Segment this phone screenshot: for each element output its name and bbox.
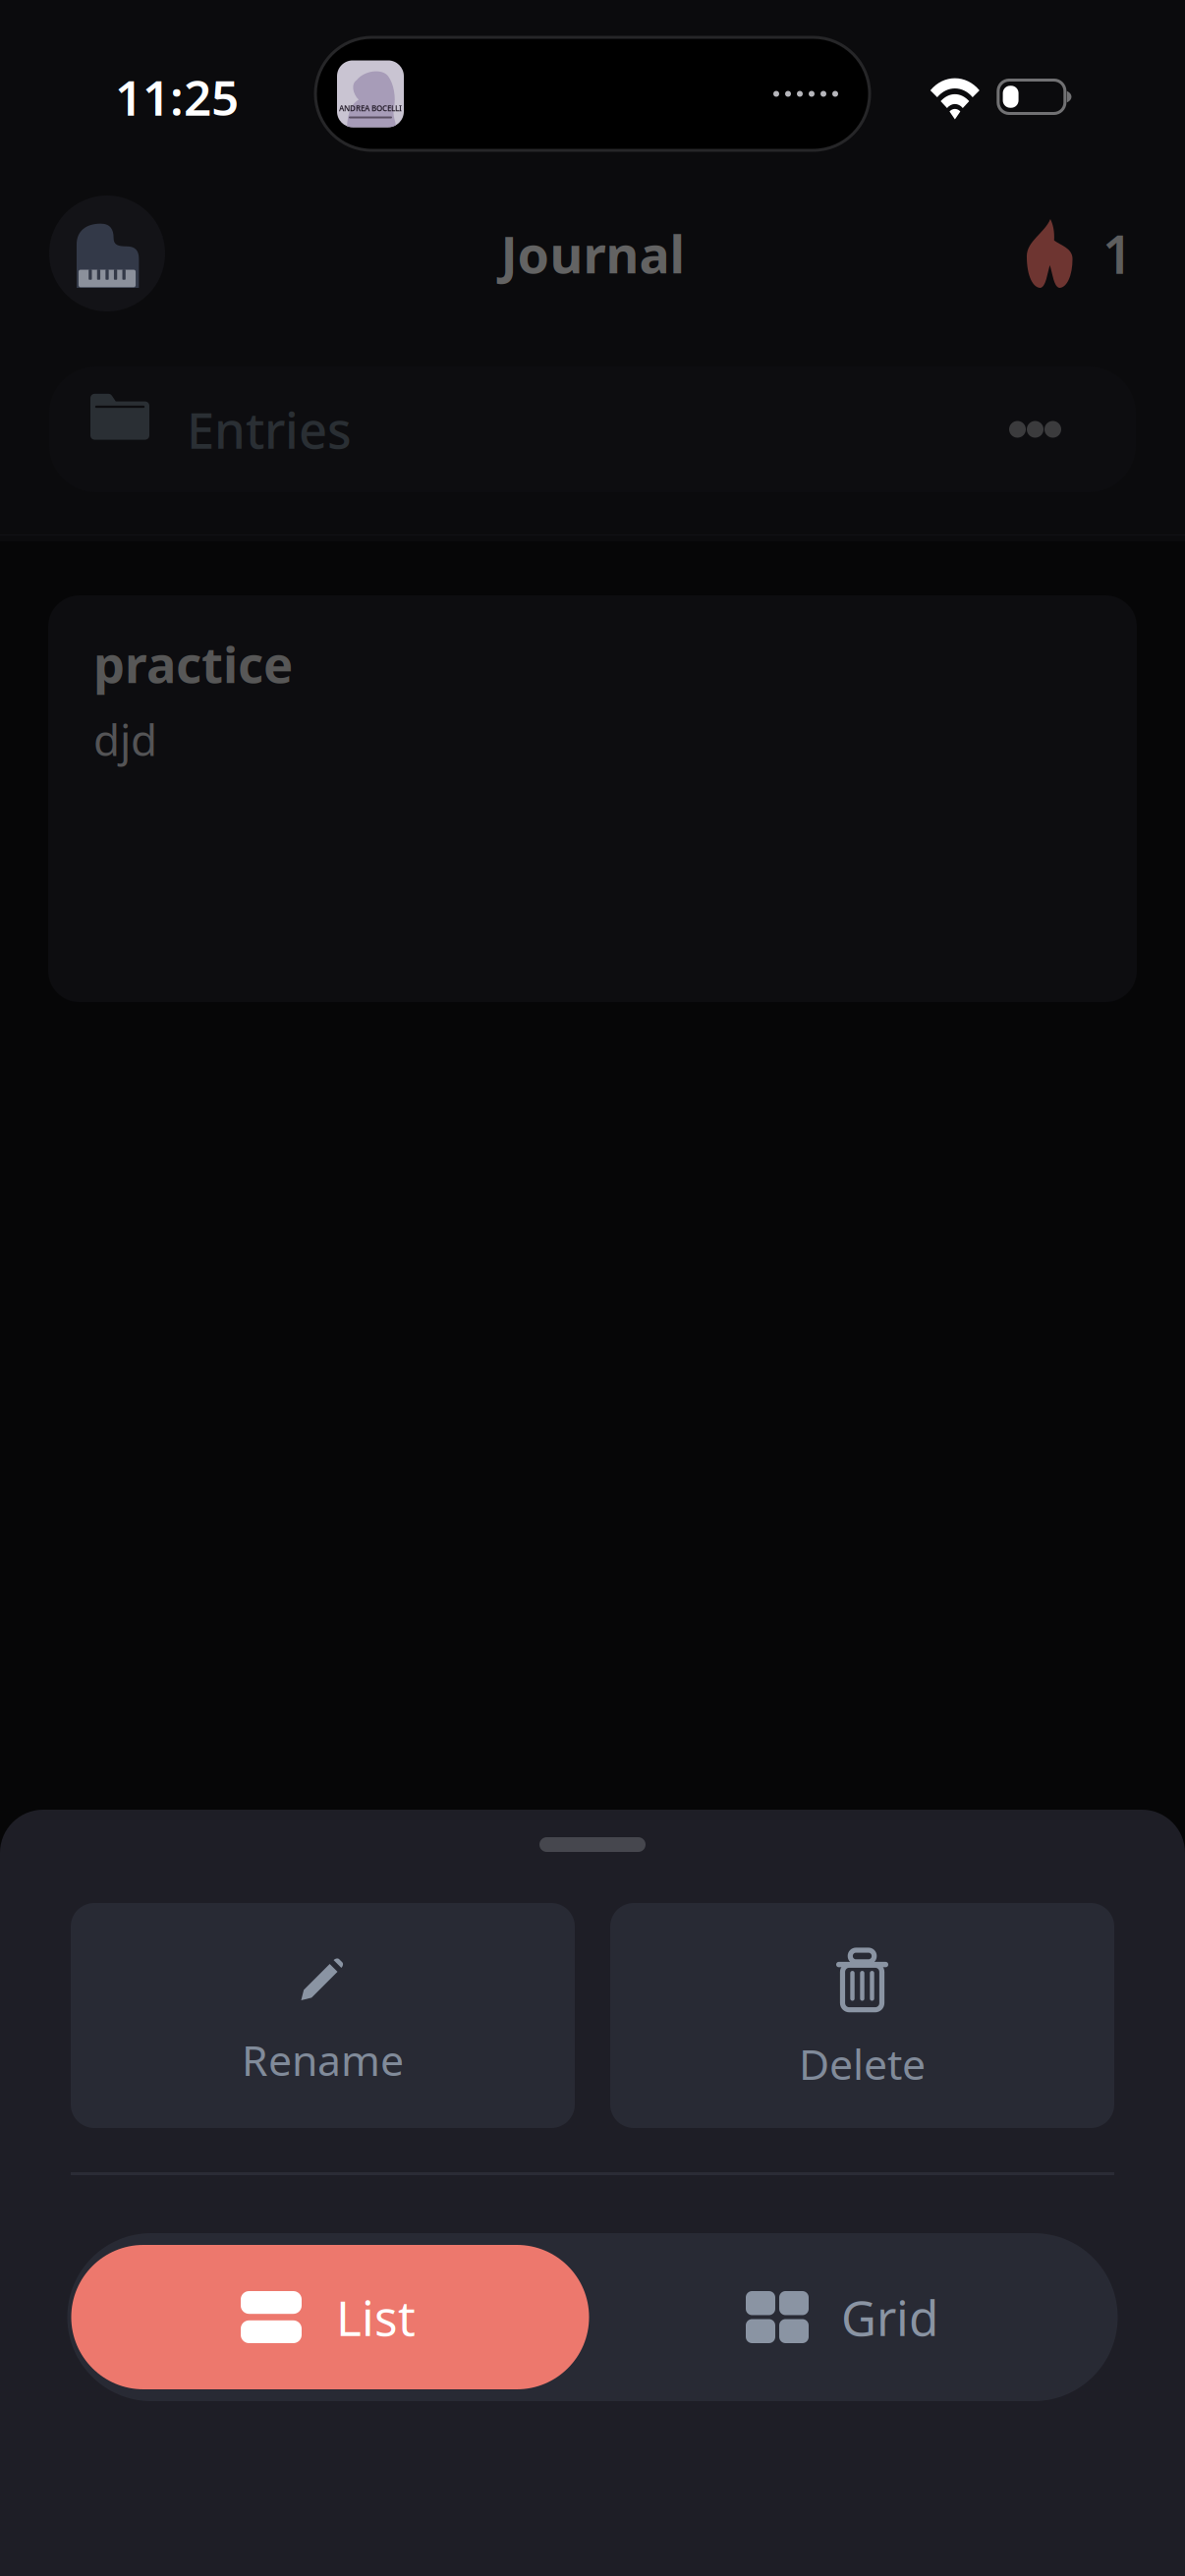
button[interactable]: Entries <box>49 366 1136 492</box>
button[interactable]: List <box>71 2245 589 2389</box>
staticText: Rename <box>242 2032 404 2087</box>
staticText: Journal <box>501 220 684 287</box>
staticText: List <box>336 2285 416 2349</box>
staticText: Delete <box>799 2036 926 2091</box>
staticText: practice <box>93 631 293 697</box>
button[interactable]: Streak count <box>1026 219 1133 288</box>
button[interactable]: practice <box>48 595 1137 1002</box>
staticText: Entries <box>187 396 352 462</box>
staticText: ANDREA BOCELLI <box>339 103 402 113</box>
button[interactable]: Rename <box>71 1903 575 2128</box>
button[interactable]: Folder options <box>1009 366 1061 492</box>
staticText: 11:25 <box>115 65 239 129</box>
button[interactable]: Grid <box>597 2245 1115 2389</box>
button[interactable]: Instrument <box>49 196 165 311</box>
button[interactable]: Delete <box>610 1903 1114 2128</box>
staticText: djd <box>93 711 157 768</box>
staticText: 1 <box>1102 219 1133 288</box>
staticText: Grid <box>841 2285 938 2349</box>
